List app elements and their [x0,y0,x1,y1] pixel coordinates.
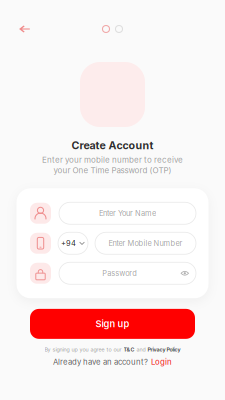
staticText: T&C [123,346,134,353]
staticText: Create Account [71,139,153,152]
staticText: Enter Your Name [99,209,156,218]
staticText: Sign up [95,318,129,329]
staticText: Privacy Policy [147,346,180,353]
button[interactable]: Login [151,357,172,367]
button[interactable]: Password [59,262,196,284]
staticText: Enter your mobile number to receive [42,155,183,165]
staticText: and [134,346,147,353]
button[interactable]: Sign up [30,309,195,339]
button[interactable]: Enter Your Name [59,202,196,224]
button[interactable]: Enter Mobile Number [95,232,196,254]
staticText: Password [102,269,137,278]
staticText: your One Time Password (OTP) [53,166,171,175]
staticText: Already have an account? [53,357,148,367]
staticText: Enter Mobile Number [108,239,182,248]
staticText: +94 [61,239,76,248]
staticText: By signing up you agree to our [44,346,123,353]
button[interactable]: Back [13,20,35,38]
button[interactable]: +94 [58,232,88,254]
staticText: Login [151,357,172,367]
